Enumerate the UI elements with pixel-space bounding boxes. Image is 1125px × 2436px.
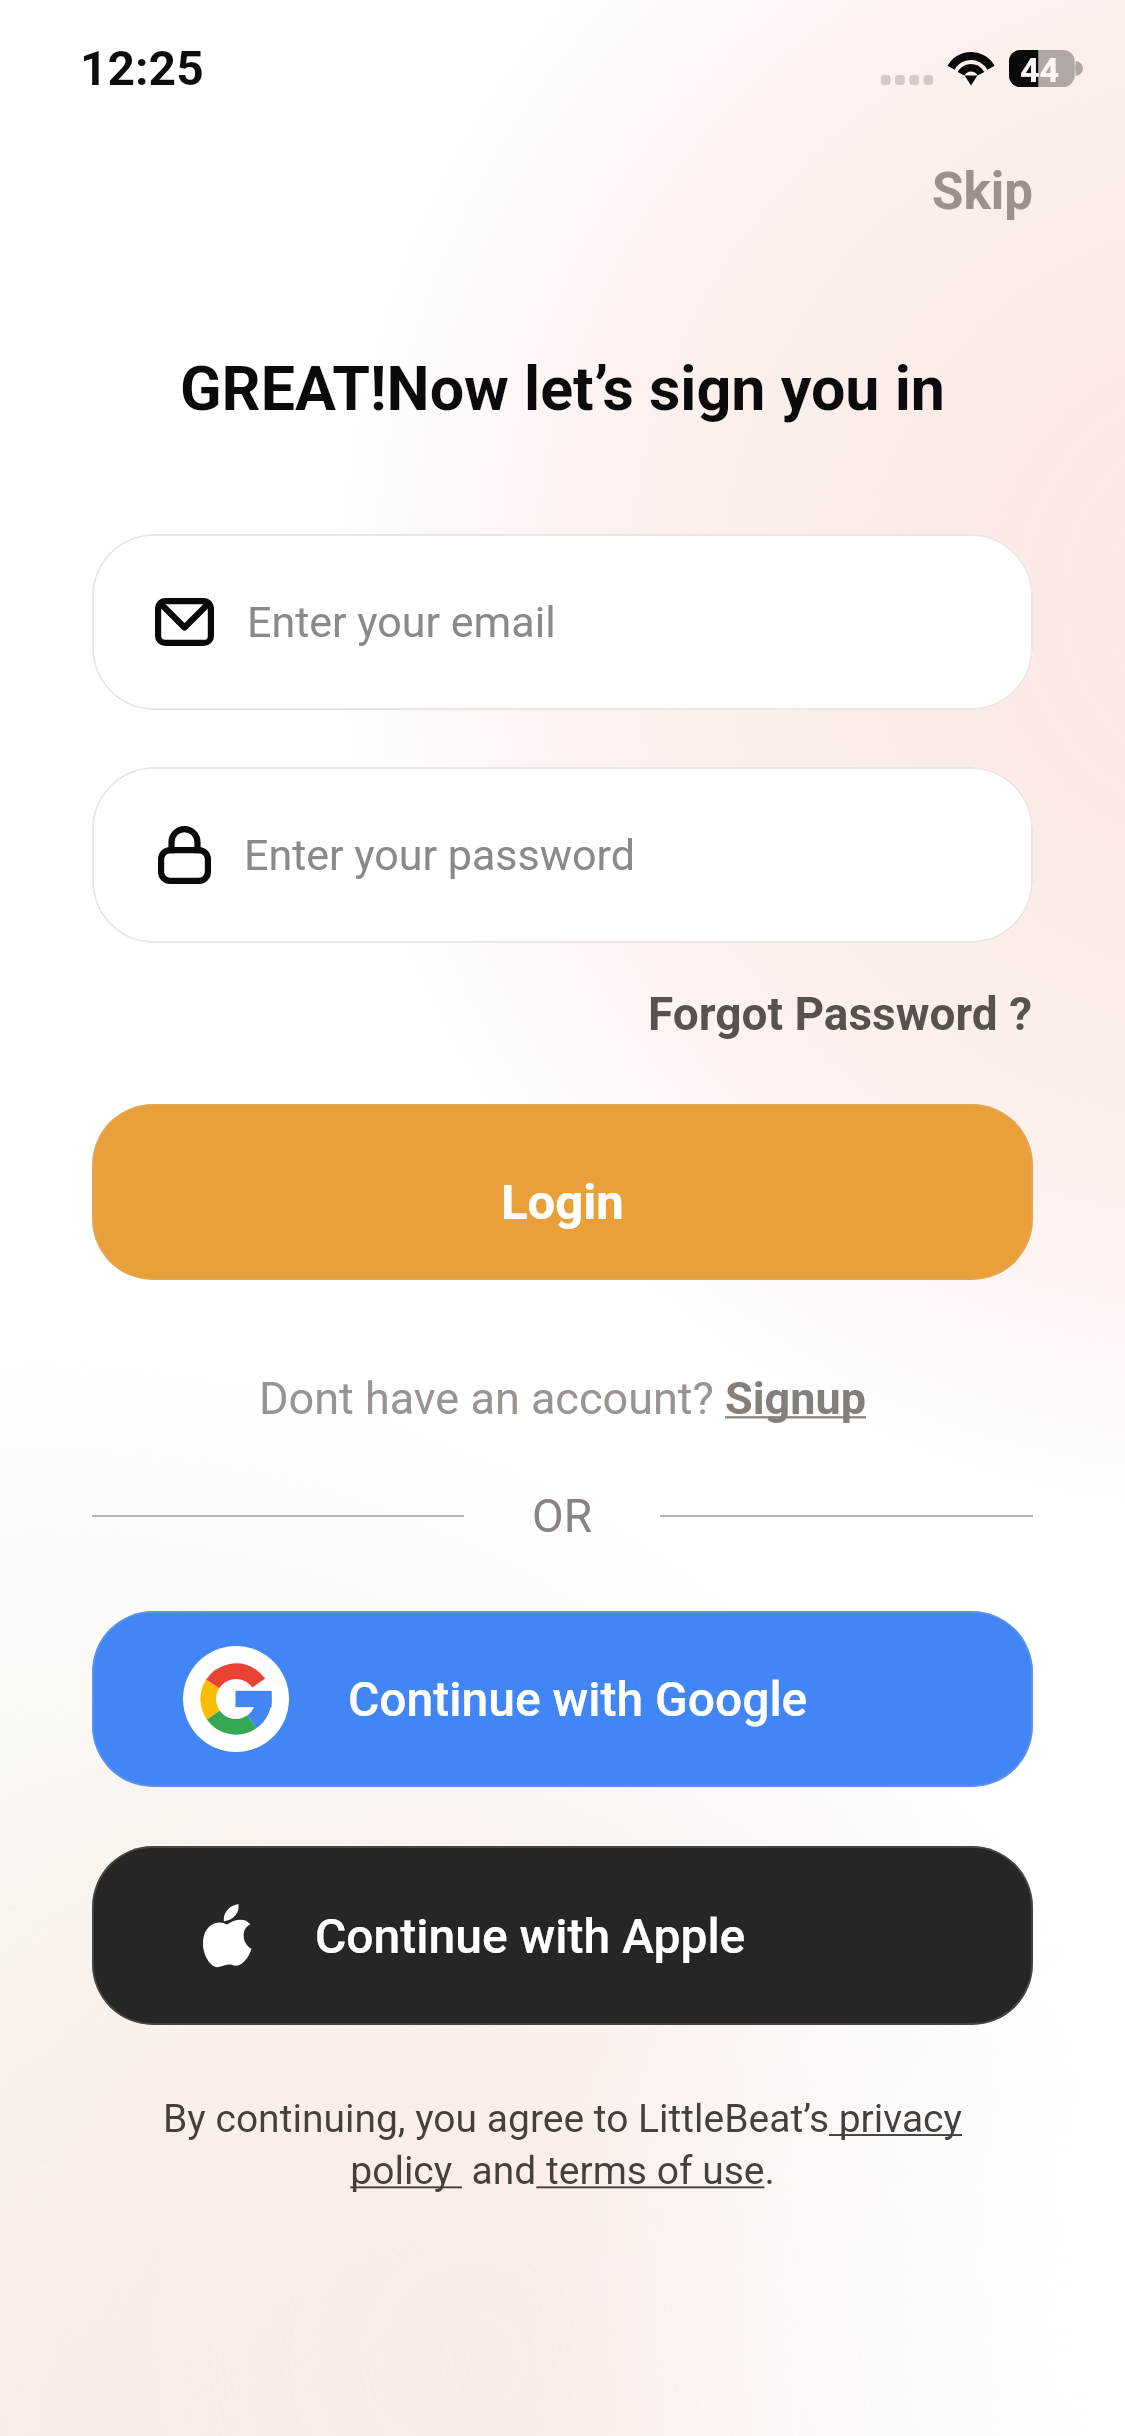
staticText: 12:25 [80,40,204,96]
staticText: Enter your email [247,597,556,647]
staticText: GREAT!Now let’s sign you in [0,353,1125,424]
staticText: Login [501,1174,624,1231]
button[interactable]: Skip [892,152,1125,232]
staticText: Forgot Password ? [648,987,1033,1041]
staticText: Continue with Apple [315,1908,746,1964]
button[interactable]: Continue with Google [92,1611,1033,1787]
staticText: By continuing, you agree to LittleBeat’s… [140,2096,985,2194]
button[interactable]: Password [92,767,1033,943]
button[interactable]: Forgot Password ? [618,979,1125,1049]
staticText: Continue with Google [348,1671,808,1727]
staticText: Dont have an account? [259,1372,725,1425]
button[interactable]: Login [92,1104,1033,1280]
staticText: Skip [932,162,1033,222]
button[interactable]: By continuing, you agree to LittleBeat’s… [140,2096,985,2194]
staticText: 44 [1020,50,1060,87]
staticText: Signup [725,1372,867,1425]
staticText: Enter your password [244,830,635,880]
button[interactable]: Email [92,534,1033,710]
button[interactable]: Continue with Apple [92,1846,1033,2025]
staticText: OR [532,1489,592,1543]
button[interactable]: Dont have an account? [259,1372,867,1425]
